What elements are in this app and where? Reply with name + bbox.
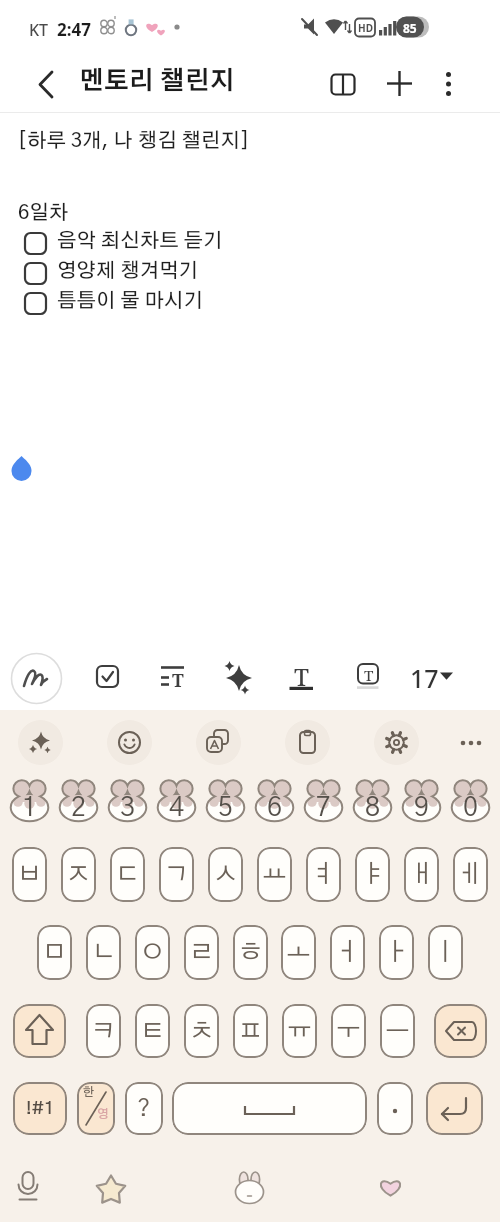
staticText: ㄴ: [91, 940, 116, 965]
staticText: 4: [169, 794, 185, 821]
staticText: 0: [463, 794, 479, 821]
button[interactable]: 음악 최신차트 듣기: [20, 230, 280, 257]
button[interactable]: ㅍ: [233, 1004, 268, 1058]
button[interactable]: 영양제 챙겨먹기: [20, 260, 280, 287]
button[interactable]: ㅅ: [208, 847, 243, 902]
staticText: ㅜ: [336, 1019, 361, 1044]
button[interactable]: 2: [54, 779, 103, 832]
button[interactable]: [233, 1170, 267, 1210]
button[interactable]: 3: [103, 779, 152, 832]
button[interactable]: ㅌ: [135, 1004, 170, 1058]
button[interactable]: 0: [446, 779, 495, 832]
button[interactable]: T: [156, 661, 189, 692]
staticText: 6: [267, 794, 283, 821]
staticText: ㄱ: [164, 862, 189, 887]
button[interactable]: [432, 66, 466, 102]
button[interactable]: [92, 661, 123, 692]
staticText: ㅔ: [458, 862, 483, 887]
button[interactable]: 1: [5, 779, 54, 832]
button[interactable]: [18, 720, 63, 765]
staticText: ㅏ: [384, 940, 409, 965]
staticText: T: [172, 668, 184, 693]
staticText: ㅑ: [360, 862, 385, 887]
button[interactable]: 5: [201, 779, 250, 832]
button[interactable]: 6: [250, 779, 299, 832]
button[interactable]: ㄹ: [184, 925, 219, 980]
button[interactable]: ㅋ: [86, 1004, 121, 1058]
button[interactable]: T: [353, 659, 383, 695]
button[interactable]: ㅊ: [184, 1004, 219, 1058]
staticText: ㅓ: [335, 940, 360, 965]
button[interactable]: ㅗ: [281, 925, 316, 980]
button[interactable]: ㅈ: [61, 847, 96, 902]
button[interactable]: [376, 1173, 406, 1203]
button[interactable]: T: [284, 659, 320, 695]
button[interactable]: ㅓ: [330, 925, 365, 980]
button[interactable]: [30, 68, 64, 102]
staticText: ㅋ: [91, 1019, 116, 1044]
button[interactable]: [285, 720, 330, 765]
staticText: 85: [403, 20, 417, 36]
button[interactable]: [434, 1004, 487, 1058]
staticText: ㅕ: [311, 862, 336, 887]
staticText: !#1: [26, 1100, 54, 1117]
button[interactable]: ㄷ: [110, 847, 145, 902]
button[interactable]: ?: [125, 1082, 163, 1135]
staticText: ㅗ: [286, 940, 311, 965]
button[interactable]: 8: [348, 779, 397, 832]
button[interactable]: ㅣ: [428, 925, 463, 980]
button[interactable]: [196, 720, 241, 765]
button[interactable]: ㅎ: [233, 925, 268, 980]
button[interactable]: ㅁ: [37, 925, 72, 980]
button[interactable]: [172, 1082, 367, 1135]
button[interactable]: ㅠ: [282, 1004, 317, 1058]
staticText: 3: [120, 794, 136, 821]
staticText: 영양제 챙겨먹기: [57, 261, 199, 281]
button[interactable]: [10, 1169, 46, 1211]
staticText: ㅊ: [189, 1019, 214, 1044]
button[interactable]: [93, 1172, 129, 1208]
button[interactable]: [107, 720, 152, 765]
button[interactable]: 한: [77, 1082, 115, 1135]
staticText: ㅇ: [140, 940, 165, 965]
staticText: 8: [365, 794, 381, 821]
staticText: 영: [97, 1108, 109, 1120]
button[interactable]: ㅛ: [257, 847, 292, 902]
button[interactable]: [222, 659, 253, 695]
button[interactable]: [382, 66, 418, 102]
button[interactable]: !#1: [13, 1082, 67, 1135]
button[interactable]: 9: [397, 779, 446, 832]
button[interactable]: ㅂ: [12, 847, 47, 902]
staticText: HD: [358, 21, 373, 35]
staticText: ㅈ: [66, 862, 91, 887]
button[interactable]: 4: [152, 779, 201, 832]
button[interactable]: [455, 728, 487, 758]
button[interactable]: 틈틈이 물 마시기: [20, 290, 280, 317]
button[interactable]: [325, 66, 361, 102]
staticText: ㄹ: [189, 940, 214, 965]
button[interactable]: [426, 1082, 483, 1135]
button[interactable]: 7: [299, 779, 348, 832]
staticText: T: [364, 665, 374, 685]
staticText: 멘토리 챌린지: [79, 69, 235, 94]
staticText: ㅡ: [385, 1019, 410, 1044]
staticText: 틈틈이 물 마시기: [57, 291, 203, 311]
button[interactable]: [374, 720, 419, 765]
staticText: T: [294, 660, 309, 693]
button[interactable]: ㅑ: [355, 847, 390, 902]
button[interactable]: ㅜ: [331, 1004, 366, 1058]
button[interactable]: ㅇ: [135, 925, 170, 980]
button[interactable]: ㅕ: [306, 847, 341, 902]
button[interactable]: ㅏ: [379, 925, 414, 980]
staticText: 7: [316, 794, 332, 821]
button[interactable]: [377, 1082, 413, 1135]
button[interactable]: ㅐ: [404, 847, 439, 902]
button[interactable]: ㄱ: [159, 847, 194, 902]
button[interactable]: ㄴ: [86, 925, 121, 980]
button[interactable]: [13, 1004, 66, 1058]
button[interactable]: ㅔ: [453, 847, 488, 902]
button[interactable]: ㅡ: [380, 1004, 415, 1058]
button[interactable]: 17: [402, 659, 458, 695]
staticText: ㅠ: [287, 1019, 312, 1044]
button[interactable]: [11, 653, 62, 704]
